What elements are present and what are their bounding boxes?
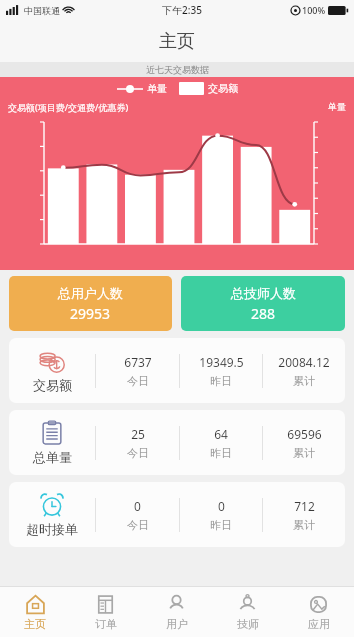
- staticText: 单量: [328, 101, 346, 112]
- staticText: 总用户人数: [58, 285, 123, 301]
- staticText: 下午2:35: [162, 3, 202, 17]
- staticText: 19349.5: [199, 354, 244, 370]
- staticText: 100%: [302, 4, 326, 16]
- staticText: 用户: [166, 617, 188, 631]
- staticText: 0: [218, 498, 225, 514]
- staticText: 应用: [308, 617, 330, 631]
- staticText: 0: [134, 498, 141, 514]
- staticText: 288: [251, 304, 276, 323]
- staticText: 总技师人数: [231, 285, 296, 301]
- staticText: 单量: [147, 82, 167, 95]
- staticText: 29953: [70, 304, 111, 323]
- staticText: 昨日: [210, 518, 232, 532]
- staticText: 技师: [237, 617, 259, 631]
- staticText: 近七天交易数据: [146, 64, 209, 75]
- staticText: 累计: [293, 374, 315, 388]
- button[interactable]: 总技师人数: [181, 276, 345, 331]
- staticText: 累计: [293, 518, 315, 532]
- staticText: 总单量: [33, 449, 72, 465]
- staticText: 交易额(项目费/交通费/优惠券): [8, 101, 129, 113]
- staticText: 订单: [95, 617, 117, 631]
- staticText: 主页: [24, 617, 46, 631]
- staticText: 64: [214, 426, 228, 442]
- staticText: 主页: [159, 30, 195, 53]
- staticText: 交易额: [208, 82, 238, 95]
- button[interactable]: 交易额: [9, 338, 345, 403]
- staticText: 69596: [287, 426, 322, 442]
- staticText: 今日: [127, 374, 149, 388]
- button[interactable]: 应用: [283, 587, 354, 637]
- staticText: 20084.12: [278, 354, 330, 370]
- button[interactable]: 订单: [70, 587, 141, 637]
- button[interactable]: 技师: [212, 587, 283, 637]
- staticText: 昨日: [210, 446, 232, 460]
- button[interactable]: 总用户人数: [9, 276, 172, 331]
- button[interactable]: 用户: [141, 587, 212, 637]
- staticText: 今日: [127, 518, 149, 532]
- button[interactable]: 主页: [0, 587, 70, 637]
- staticText: 超时接单: [26, 521, 78, 537]
- staticText: 6737: [124, 354, 152, 370]
- button[interactable]: 总单量: [9, 410, 345, 475]
- staticText: 昨日: [210, 374, 232, 388]
- staticText: 中国联通: [24, 5, 60, 16]
- button[interactable]: 超时接单: [9, 482, 345, 547]
- staticText: 今日: [127, 446, 149, 460]
- staticText: 交易额: [33, 377, 72, 393]
- staticText: 累计: [293, 446, 315, 460]
- staticText: 25: [131, 426, 145, 442]
- staticText: 712: [294, 498, 315, 514]
